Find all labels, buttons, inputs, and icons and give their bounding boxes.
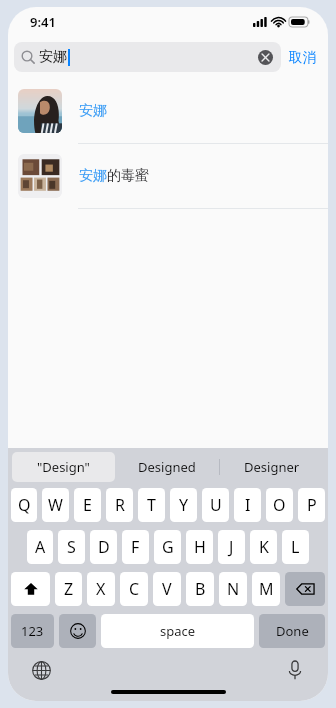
button[interactable]: "Design"	[12, 452, 115, 482]
button[interactable]: K	[250, 530, 277, 564]
button[interactable]: Done	[259, 614, 325, 648]
button[interactable]: Shift	[11, 572, 50, 606]
staticText: S	[67, 536, 76, 558]
staticText: A	[35, 536, 46, 558]
staticText: space	[160, 622, 196, 640]
button[interactable]: U	[202, 488, 229, 522]
staticText: Y	[179, 494, 189, 516]
button[interactable]: J	[218, 530, 245, 564]
staticText: "Design"	[37, 458, 90, 476]
staticText: J	[229, 536, 234, 558]
staticText: Designer	[244, 458, 300, 476]
staticText: G	[162, 536, 174, 558]
staticText: T	[147, 494, 156, 516]
staticText: B	[195, 578, 206, 600]
staticText: Z	[64, 578, 74, 600]
button[interactable]: Emoji	[59, 614, 96, 648]
staticText: H	[194, 536, 206, 558]
staticText: X	[96, 578, 106, 600]
button[interactable]: O	[266, 488, 293, 522]
button[interactable]: 安娜	[8, 79, 328, 144]
button[interactable]: Dictation	[282, 657, 308, 683]
button[interactable]: N	[219, 572, 247, 606]
staticText: Done	[276, 622, 309, 640]
button[interactable]: Change keyboard	[28, 657, 54, 683]
button[interactable]: Designed	[115, 452, 219, 482]
button[interactable]: A	[27, 530, 53, 564]
button[interactable]: 安娜的毒蜜	[8, 144, 328, 209]
staticText: K	[259, 536, 269, 558]
button[interactable]: Y	[170, 488, 197, 522]
staticText: 123	[21, 622, 44, 640]
button[interactable]: 123	[11, 614, 54, 648]
button[interactable]: X	[87, 572, 115, 606]
staticText: W	[48, 494, 63, 516]
button[interactable]: Backspace	[285, 572, 325, 606]
staticText: 安娜	[39, 48, 67, 66]
staticText: N	[227, 578, 240, 600]
staticText: 安娜	[79, 102, 107, 120]
button[interactable]: D	[90, 530, 117, 564]
staticText: O	[273, 494, 286, 516]
staticText: P	[307, 494, 317, 516]
button[interactable]: Z	[55, 572, 82, 606]
button[interactable]: 取消	[281, 45, 318, 70]
staticText: 安娜的毒蜜	[79, 167, 149, 185]
button[interactable]: S	[58, 530, 85, 564]
button[interactable]: Clear text	[256, 48, 274, 66]
button[interactable]: C	[120, 572, 148, 606]
button[interactable]: Designer	[220, 452, 324, 482]
button[interactable]: H	[186, 530, 213, 564]
button[interactable]: B	[186, 572, 214, 606]
staticText: Q	[18, 494, 31, 516]
staticText: C	[129, 578, 140, 600]
button[interactable]: T	[138, 488, 165, 522]
button[interactable]: Q	[11, 488, 37, 522]
button[interactable]: V	[153, 572, 181, 606]
button[interactable]: M	[252, 572, 280, 606]
staticText: U	[210, 494, 222, 516]
button[interactable]: P	[298, 488, 325, 522]
button[interactable]: I	[234, 488, 261, 522]
staticText: I	[245, 494, 251, 516]
button[interactable]: G	[154, 530, 181, 564]
staticText: 取消	[289, 49, 316, 66]
staticText: F	[131, 536, 140, 558]
staticText: R	[115, 494, 125, 516]
staticText: Designed	[138, 458, 196, 476]
staticText: E	[83, 494, 92, 516]
staticText: M	[259, 578, 274, 600]
staticText: V	[162, 578, 172, 600]
button[interactable]: L	[282, 530, 309, 564]
button[interactable]: W	[42, 488, 69, 522]
button[interactable]: 安娜	[14, 42, 281, 72]
button[interactable]: space	[101, 614, 254, 648]
button[interactable]: E	[74, 488, 101, 522]
button[interactable]: F	[122, 530, 149, 564]
button[interactable]: R	[106, 488, 133, 522]
staticText: L	[291, 536, 300, 558]
staticText: D	[98, 536, 110, 558]
staticText: 9:41	[30, 13, 56, 31]
